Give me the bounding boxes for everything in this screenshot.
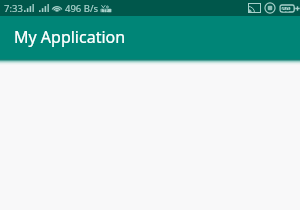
staticText: My Application (14, 26, 126, 48)
staticText: LTE (101, 8, 109, 14)
staticText: 496 B/s (65, 2, 99, 15)
staticText: 7:33 (4, 2, 23, 15)
button[interactable]: My Application (0, 16, 300, 59)
staticText: 60 (282, 5, 290, 14)
other: Cast screen (248, 3, 261, 13)
other: Alarm set (264, 2, 276, 14)
